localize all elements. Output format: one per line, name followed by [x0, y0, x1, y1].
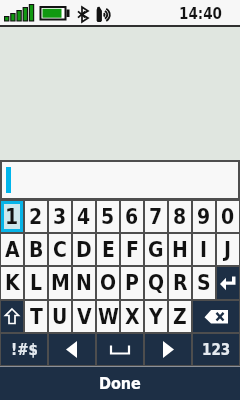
staticText: F	[126, 238, 139, 262]
button[interactable]: 9	[193, 201, 215, 232]
button[interactable]: B	[25, 234, 47, 265]
button[interactable]: W	[97, 301, 119, 332]
staticText: I	[200, 238, 208, 262]
staticText: Done	[99, 374, 141, 393]
button[interactable]: F	[121, 234, 143, 265]
staticText: 4	[77, 205, 91, 229]
button[interactable]: Z	[169, 301, 191, 332]
button[interactable]: I	[193, 234, 215, 265]
button[interactable]: 7	[145, 201, 167, 232]
staticText: !#$	[11, 341, 38, 358]
staticText: O	[100, 271, 117, 295]
staticText: E	[102, 238, 115, 262]
button[interactable]: U	[49, 301, 71, 332]
button[interactable]: 8	[169, 201, 191, 232]
button[interactable]: O	[97, 267, 119, 299]
staticText: X	[125, 305, 140, 329]
button[interactable]: Cursor right	[145, 334, 191, 365]
button[interactable]: 3	[49, 201, 71, 232]
button[interactable]: J	[217, 234, 239, 265]
staticText: 14:40	[179, 5, 222, 22]
button[interactable]: H	[169, 234, 191, 265]
button[interactable]: S	[193, 267, 215, 299]
staticText: N	[76, 271, 92, 295]
button[interactable]: Shift	[1, 301, 23, 332]
staticText: V	[77, 305, 92, 329]
staticText: 7	[149, 205, 163, 229]
staticText: 2	[29, 205, 43, 229]
staticText: Q	[148, 271, 165, 295]
button[interactable]: 0	[217, 201, 239, 232]
button[interactable]: C	[49, 234, 71, 265]
staticText: H	[172, 238, 188, 262]
button[interactable]: Cursor left	[49, 334, 95, 365]
button[interactable]: L	[25, 267, 47, 299]
button[interactable]: Enter	[217, 267, 239, 299]
staticText: J	[224, 238, 232, 262]
button[interactable]: 4	[73, 201, 95, 232]
button[interactable]: 1	[4, 204, 20, 229]
button[interactable]: K	[1, 267, 23, 299]
staticText: 5	[101, 205, 115, 229]
button[interactable]: D	[73, 234, 95, 265]
button[interactable]: P	[121, 267, 143, 299]
button[interactable]: !#$	[1, 334, 47, 365]
other: Bluetooth on	[78, 7, 88, 22]
staticText: U	[52, 305, 68, 329]
staticText: C	[53, 238, 67, 262]
button[interactable]: Q	[145, 267, 167, 299]
staticText: 123	[202, 341, 231, 358]
staticText: 1	[5, 205, 19, 229]
button[interactable]: 2	[25, 201, 47, 232]
staticText: 3	[53, 205, 67, 229]
staticText: T	[30, 305, 43, 329]
staticText: W	[98, 305, 119, 329]
staticText: Y	[149, 305, 163, 329]
button[interactable]: N	[73, 267, 95, 299]
staticText: R	[173, 271, 188, 295]
button[interactable]: 6	[121, 201, 143, 232]
staticText: G	[148, 238, 164, 262]
staticText: M	[51, 271, 70, 295]
button[interactable]: Done	[0, 366, 240, 400]
staticText: K	[5, 271, 20, 295]
button[interactable]: 5	[97, 201, 119, 232]
button[interactable]: E	[97, 234, 119, 265]
staticText: 0	[221, 205, 235, 229]
button[interactable]	[2, 162, 238, 198]
button[interactable]: A	[1, 234, 23, 265]
staticText: 8	[173, 205, 187, 229]
button[interactable]: Backspace	[193, 301, 239, 332]
staticText: 6	[125, 205, 139, 229]
button[interactable]: G	[145, 234, 167, 265]
staticText: L	[30, 271, 43, 295]
button[interactable]: V	[73, 301, 95, 332]
other: Ringer on	[96, 6, 112, 22]
button[interactable]: Space	[97, 334, 143, 365]
button[interactable]: 123	[193, 334, 239, 365]
staticText: D	[76, 238, 92, 262]
button[interactable]: X	[121, 301, 143, 332]
button[interactable]: T	[25, 301, 47, 332]
button[interactable]: Y	[145, 301, 167, 332]
staticText: A	[5, 238, 20, 262]
staticText: 9	[197, 205, 211, 229]
button[interactable]: R	[169, 267, 191, 299]
staticText: S	[197, 271, 211, 295]
staticText: Z	[173, 305, 187, 329]
staticText: P	[125, 271, 139, 295]
button[interactable]: M	[49, 267, 71, 299]
staticText: B	[29, 238, 44, 262]
